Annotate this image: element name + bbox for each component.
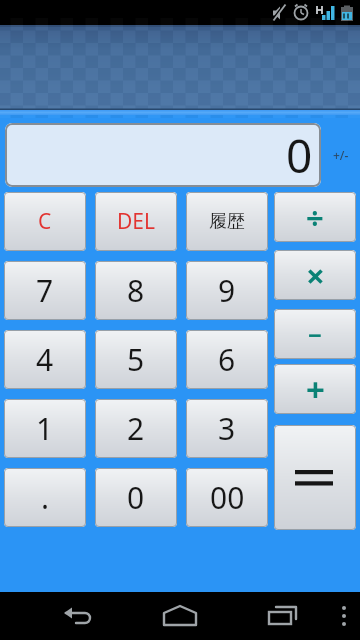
staticText: 5 <box>127 339 145 380</box>
button[interactable]: +/- <box>322 123 360 187</box>
button[interactable]: 6 <box>186 330 268 389</box>
button[interactable]: 履歴 <box>186 192 268 251</box>
button[interactable]: + <box>274 364 356 414</box>
staticText: 00 <box>210 477 245 518</box>
button[interactable]: 4 <box>4 330 86 389</box>
button[interactable]: 9 <box>186 261 268 320</box>
staticText: 履歴 <box>209 210 245 233</box>
staticText: DEL <box>117 207 156 236</box>
button[interactable]: − <box>274 309 356 359</box>
button[interactable]: 5 <box>95 330 177 389</box>
button[interactable] <box>274 425 356 530</box>
staticText: ÷ <box>306 196 324 238</box>
button[interactable]: 3 <box>186 399 268 458</box>
staticText: 4 <box>36 339 54 380</box>
staticText: C <box>38 207 52 236</box>
button[interactable] <box>260 592 308 640</box>
staticText: 3 <box>218 408 236 449</box>
button[interactable]: × <box>274 250 356 300</box>
staticText: 9 <box>218 270 236 311</box>
button[interactable] <box>52 592 100 640</box>
staticText: − <box>308 318 322 351</box>
button[interactable]: 00 <box>186 468 268 527</box>
staticText: 8 <box>127 270 145 311</box>
button[interactable]: 7 <box>4 261 86 320</box>
button[interactable]: . <box>4 468 86 527</box>
staticText: . <box>41 477 50 518</box>
staticText: 0 <box>286 124 313 187</box>
staticText: 2 <box>127 408 145 449</box>
button[interactable]: DEL <box>95 192 177 251</box>
button[interactable]: ÷ <box>274 192 356 242</box>
staticText: + <box>306 367 325 412</box>
button[interactable]: C <box>4 192 86 251</box>
staticText: +/- <box>333 147 349 163</box>
staticText: 1 <box>36 408 54 449</box>
button[interactable] <box>330 592 358 640</box>
staticText: 6 <box>218 339 236 380</box>
button[interactable]: 1 <box>4 399 86 458</box>
button[interactable] <box>156 592 204 640</box>
button[interactable]: 0 <box>95 468 177 527</box>
staticText: × <box>306 253 325 298</box>
button[interactable]: 8 <box>95 261 177 320</box>
staticText: 0 <box>127 477 145 518</box>
button[interactable]: 2 <box>95 399 177 458</box>
staticText: 7 <box>36 270 54 311</box>
